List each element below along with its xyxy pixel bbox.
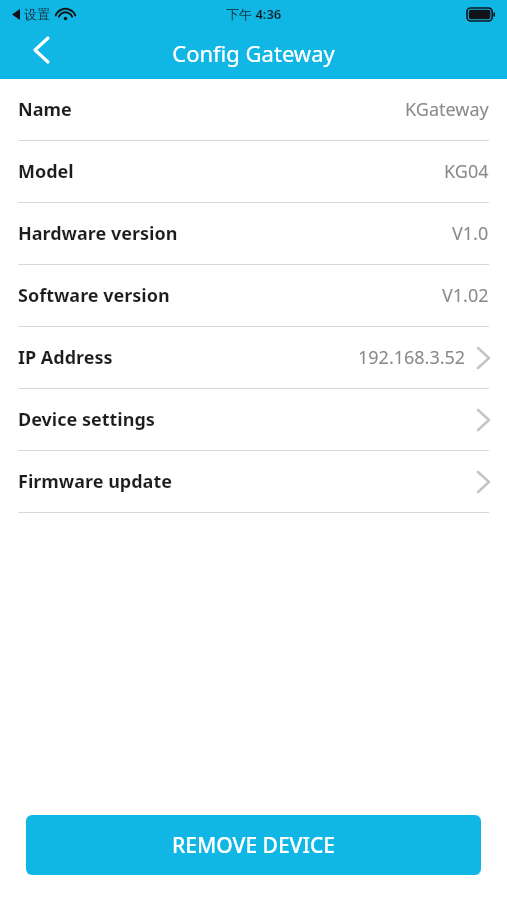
staticText: Device settings: [18, 407, 155, 432]
staticText: V1.0: [452, 221, 489, 246]
staticText: 设置: [24, 6, 50, 22]
staticText: V1.02: [442, 283, 489, 308]
button[interactable]: Back: [18, 27, 64, 73]
staticText: KG04: [444, 159, 489, 184]
button[interactable]: Firmware update: [0, 451, 507, 512]
button[interactable]: Hardware version: [0, 203, 507, 264]
button[interactable]: Software version: [0, 265, 507, 326]
staticText: Config Gateway: [0, 38, 507, 68]
staticText: IP Address: [18, 345, 113, 370]
staticText: REMOVE DEVICE: [172, 831, 336, 860]
staticText: KGateway: [405, 97, 489, 122]
staticText: Model: [18, 159, 74, 184]
staticText: Software version: [18, 283, 170, 308]
button[interactable]: REMOVE DEVICE: [26, 815, 481, 875]
staticText: Name: [18, 97, 72, 122]
staticText: 下午 4:36: [226, 5, 282, 23]
staticText: Firmware update: [18, 469, 172, 494]
staticText: Hardware version: [18, 221, 178, 246]
button[interactable]: Model: [0, 141, 507, 202]
button[interactable]: Name: [0, 79, 507, 140]
staticText: 192.168.3.52: [358, 345, 466, 370]
button[interactable]: IP Address: [0, 327, 507, 388]
button[interactable]: Device settings: [0, 389, 507, 450]
